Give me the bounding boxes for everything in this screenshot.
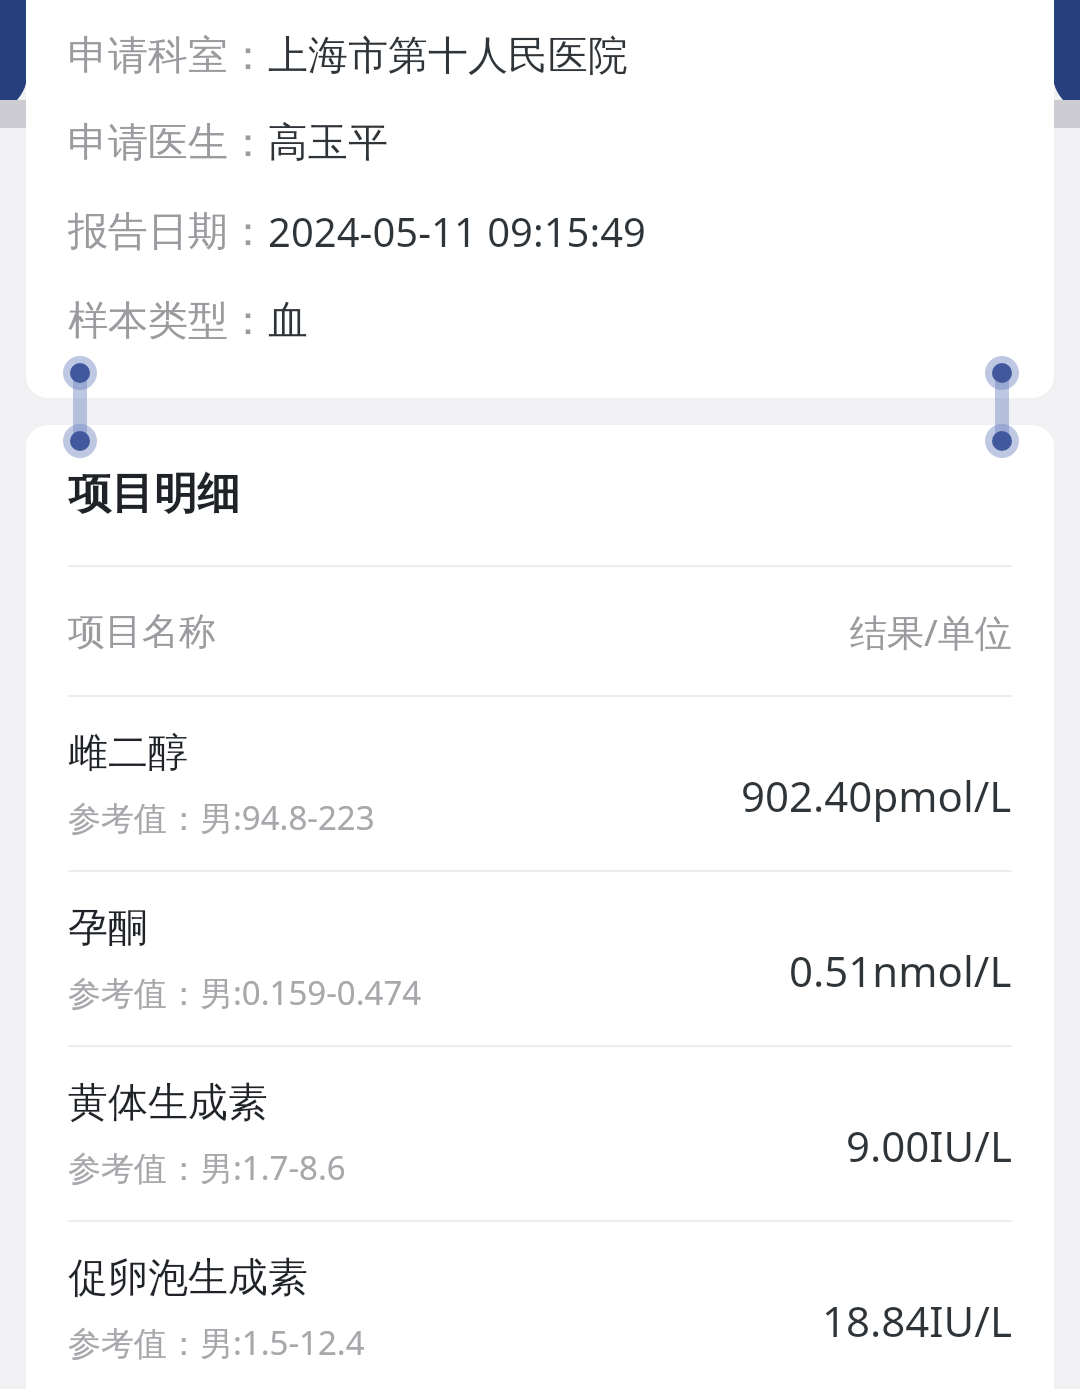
staticText: 参考值：男:1.7-8.6 xyxy=(68,1145,346,1190)
staticText: 9.00IU/L xyxy=(846,1117,1012,1174)
button[interactable]: 黄体生成素 xyxy=(26,1047,1054,1222)
staticText: 黄体生成素 xyxy=(68,1077,268,1127)
staticText: 孕酮 xyxy=(68,902,148,952)
other: Binding pin xyxy=(62,356,98,458)
staticText: 项目名称 xyxy=(68,608,216,655)
staticText: 0.51nmol/L xyxy=(789,942,1012,999)
button[interactable] xyxy=(26,0,1054,398)
staticText: 参考值：男:1.5-12.4 xyxy=(68,1320,365,1365)
button[interactable]: 雌二醇 xyxy=(26,697,1054,872)
staticText: 样本类型： xyxy=(68,295,268,345)
staticText: 申请科室： xyxy=(68,30,268,80)
staticText: 上海市第十人民医院 xyxy=(268,30,628,80)
staticText: 参考值：男:94.8-223 xyxy=(68,795,375,840)
staticText: 高玉平 xyxy=(268,117,388,167)
other: Binding pin xyxy=(984,356,1020,458)
staticText: 18.84IU/L xyxy=(822,1292,1012,1349)
staticText: 结果/单位 xyxy=(850,606,1012,657)
staticText: 血 xyxy=(268,295,308,345)
button[interactable]: 孕酮 xyxy=(26,872,1054,1047)
staticText: 参考值：男:0.159-0.474 xyxy=(68,970,422,1015)
staticText: 雌二醇 xyxy=(68,727,188,777)
staticText: 项目明细 xyxy=(68,467,240,521)
staticText: 促卵泡生成素 xyxy=(68,1252,308,1302)
button[interactable]: 促卵泡生成素 xyxy=(26,1222,1054,1389)
staticText: 902.40pmol/L xyxy=(741,767,1012,824)
staticText: 2024-05-11 09:15:49 xyxy=(268,204,646,258)
staticText: 申请医生： xyxy=(68,117,268,167)
staticText: 报告日期： xyxy=(68,206,268,256)
